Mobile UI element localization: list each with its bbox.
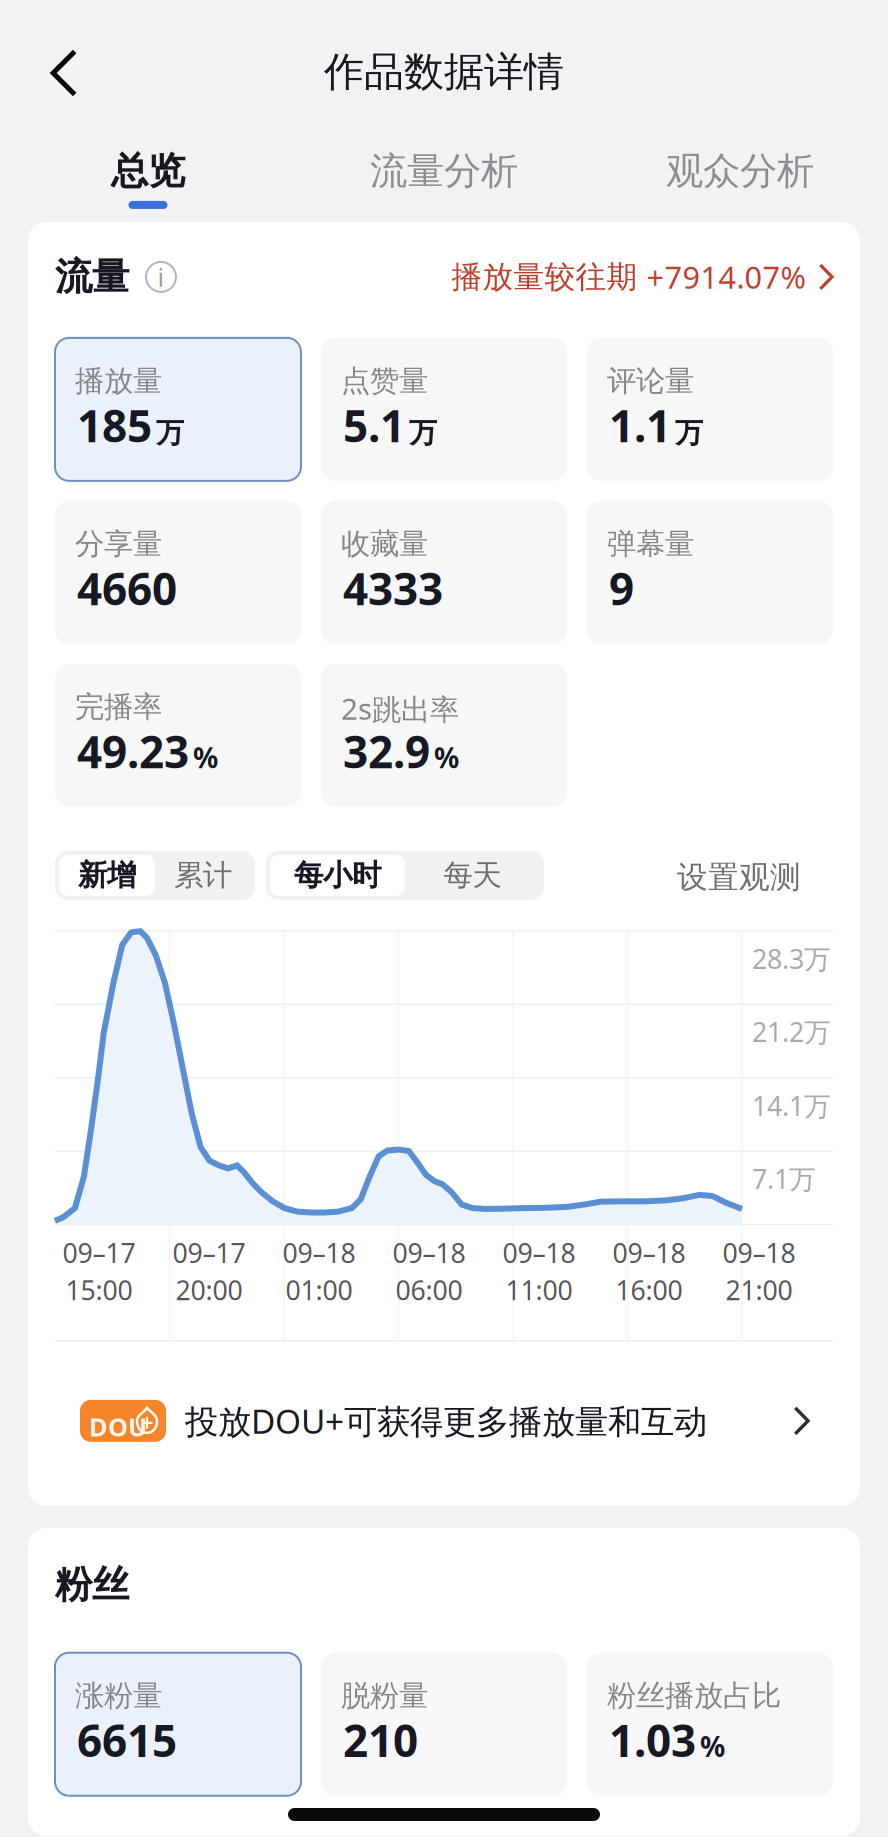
staticText: 32.9 (343, 722, 430, 780)
staticText: 累计 (174, 857, 232, 893)
staticText: 新增 (78, 857, 136, 893)
staticText: 01:00 (285, 1272, 352, 1308)
staticText: 每小时 (294, 857, 381, 893)
button[interactable]: 2s跳出率 (321, 664, 567, 807)
button[interactable]: 总览 (0, 133, 296, 209)
staticText: 14.1万 (752, 1088, 831, 1123)
staticText: 播放量 (75, 363, 162, 399)
staticText: 完播率 (75, 689, 162, 725)
staticText: 06:00 (395, 1272, 462, 1308)
button[interactable]: 分享量 (55, 501, 301, 644)
staticText: 万 (675, 416, 703, 450)
staticText: 4660 (77, 559, 177, 617)
button[interactable]: 流量分析 (296, 133, 592, 209)
staticText: 09–18 (722, 1235, 795, 1270)
staticText: 4333 (343, 559, 443, 617)
staticText: 20:00 (175, 1272, 242, 1308)
button[interactable]: 点赞量 (321, 338, 567, 481)
button[interactable]: DOU (28, 1369, 860, 1473)
staticText: 11:00 (505, 1272, 572, 1308)
button[interactable]: Back (32, 36, 96, 110)
staticText: 09–17 (172, 1235, 245, 1270)
staticText: % (193, 739, 218, 776)
staticText: 分享量 (75, 526, 162, 562)
staticText: 09–18 (282, 1235, 355, 1270)
staticText: 21:00 (725, 1272, 792, 1308)
button[interactable]: 弹幕量 (587, 501, 833, 644)
button[interactable]: 粉丝播放占比 (587, 1653, 833, 1796)
staticText: i (157, 260, 164, 294)
button[interactable]: 观众分析 (592, 133, 888, 209)
staticText: 6615 (77, 1711, 177, 1769)
staticText: 09–18 (392, 1235, 465, 1270)
staticText: 粉丝 (55, 1562, 129, 1608)
staticText: 总览 (111, 148, 185, 194)
staticText: 涨粉量 (75, 1678, 162, 1714)
button[interactable]: 评论量 (587, 338, 833, 481)
staticText: 210 (343, 1711, 418, 1769)
staticText: 21.2万 (752, 1014, 831, 1049)
staticText: % (434, 739, 459, 776)
staticText: 万 (409, 416, 437, 450)
staticText: 49.23 (77, 722, 189, 780)
staticText: 流量分析 (370, 148, 518, 194)
staticText: 评论量 (607, 363, 694, 399)
staticText: DOU (89, 1410, 147, 1443)
staticText: 185 (77, 396, 152, 454)
button[interactable]: 完播率 (55, 664, 301, 807)
staticText: +7914.07% (646, 257, 805, 297)
button[interactable]: 收藏量 (321, 501, 567, 644)
staticText: 09–18 (612, 1235, 685, 1270)
staticText: 流量 (55, 254, 129, 300)
staticText: 28.3万 (752, 941, 831, 976)
button[interactable]: 播放量较往期 (451, 257, 833, 297)
staticText: 作品数据详情 (324, 47, 564, 96)
staticText: 1.03 (609, 1711, 696, 1769)
button[interactable]: 设置观测 (677, 854, 833, 896)
button[interactable]: 每天 (405, 855, 540, 896)
staticText: 7.1万 (752, 1161, 816, 1196)
staticText: 粉丝播放占比 (607, 1678, 781, 1714)
button[interactable]: 新增 (59, 855, 155, 896)
staticText: 投放DOU+可获得更多播放量和互动 (185, 1399, 707, 1443)
staticText: 2s跳出率 (341, 689, 459, 728)
staticText: 09–18 (502, 1235, 575, 1270)
staticText: 9 (609, 559, 634, 617)
staticText: 15:00 (65, 1272, 132, 1308)
staticText: 设置观测 (677, 858, 801, 896)
staticText: 点赞量 (341, 363, 428, 399)
staticText: 16:00 (615, 1272, 682, 1308)
staticText: 脱粉量 (341, 1678, 428, 1714)
staticText: 收藏量 (341, 526, 428, 562)
staticText: 5.1 (343, 396, 405, 454)
staticText: 弹幕量 (607, 526, 694, 562)
button[interactable]: 脱粉量 (321, 1653, 567, 1796)
button[interactable]: 累计 (155, 855, 251, 896)
staticText: 每天 (443, 857, 501, 893)
staticText: % (700, 1727, 725, 1765)
button[interactable]: 涨粉量 (55, 1653, 301, 1796)
button[interactable]: 播放量 (55, 338, 301, 481)
staticText: 播放量较往期 (451, 258, 646, 296)
staticText: 观众分析 (666, 148, 814, 194)
staticText: 万 (156, 416, 184, 450)
staticText: 09–17 (62, 1235, 135, 1270)
button[interactable]: 每小时 (270, 855, 405, 896)
staticText: 1.1 (609, 396, 671, 454)
